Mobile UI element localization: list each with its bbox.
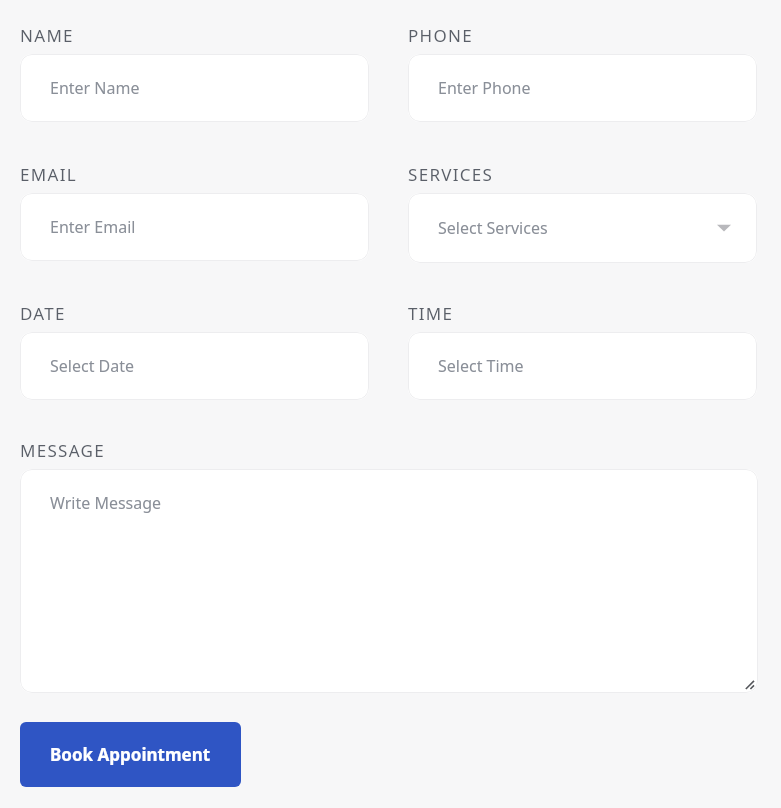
- staticText: Enter Name: [50, 77, 140, 99]
- staticText: Select Time: [438, 355, 524, 377]
- button[interactable]: Select Time: [408, 332, 757, 400]
- staticText: PHONE: [408, 24, 474, 47]
- button[interactable]: Write Message: [20, 469, 758, 693]
- staticText: Select Services: [438, 217, 548, 239]
- staticText: TIME: [408, 302, 454, 325]
- other: Open services dropdown: [717, 223, 731, 233]
- staticText: Enter Phone: [438, 77, 531, 99]
- button[interactable]: Enter Phone: [408, 54, 757, 122]
- staticText: Book Appointment: [50, 743, 211, 766]
- staticText: Select Date: [50, 355, 135, 377]
- staticText: SERVICES: [408, 163, 494, 186]
- button[interactable]: Select Date: [20, 332, 369, 400]
- staticText: DATE: [20, 302, 66, 325]
- button[interactable]: Book Appointment: [20, 722, 241, 787]
- staticText: Enter Email: [50, 216, 136, 238]
- staticText: MESSAGE: [20, 439, 105, 462]
- button[interactable]: Enter Email: [20, 193, 369, 261]
- staticText: EMAIL: [20, 163, 77, 186]
- button[interactable]: Select Services: [408, 193, 757, 263]
- staticText: NAME: [20, 24, 74, 47]
- button[interactable]: Enter Name: [20, 54, 369, 122]
- staticText: Write Message: [50, 492, 162, 514]
